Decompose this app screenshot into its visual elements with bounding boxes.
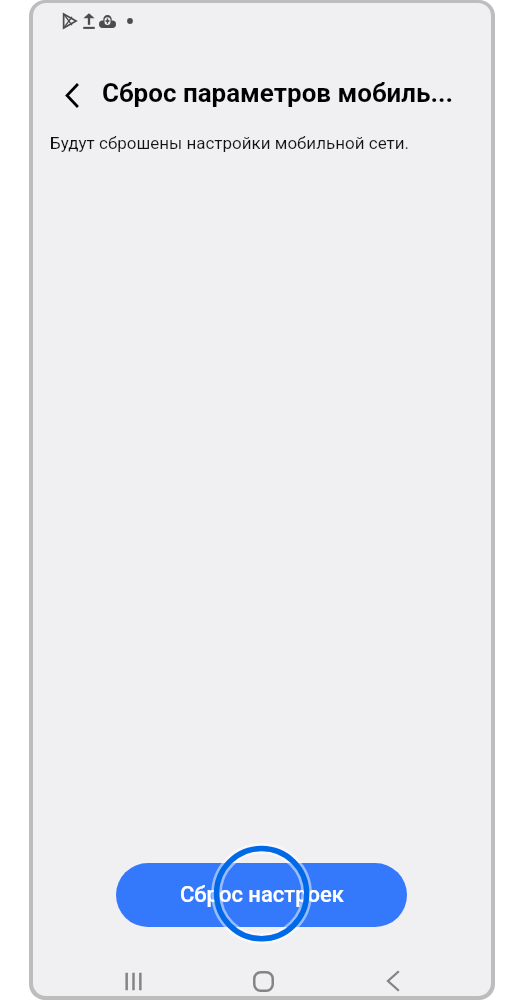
button[interactable]: Назад: [373, 961, 413, 1000]
staticText: Сброс настроек: [180, 882, 344, 908]
button[interactable]: Главный экран: [243, 961, 283, 1000]
staticText: Сброс параметров мобиль...: [102, 78, 454, 108]
staticText: Будут сброшены настройки мобильной сети.: [50, 133, 410, 153]
button[interactable]: Сброс настроек: [116, 863, 407, 927]
button[interactable]: Назад: [50, 72, 94, 116]
button[interactable]: Недавние: [113, 961, 153, 1000]
